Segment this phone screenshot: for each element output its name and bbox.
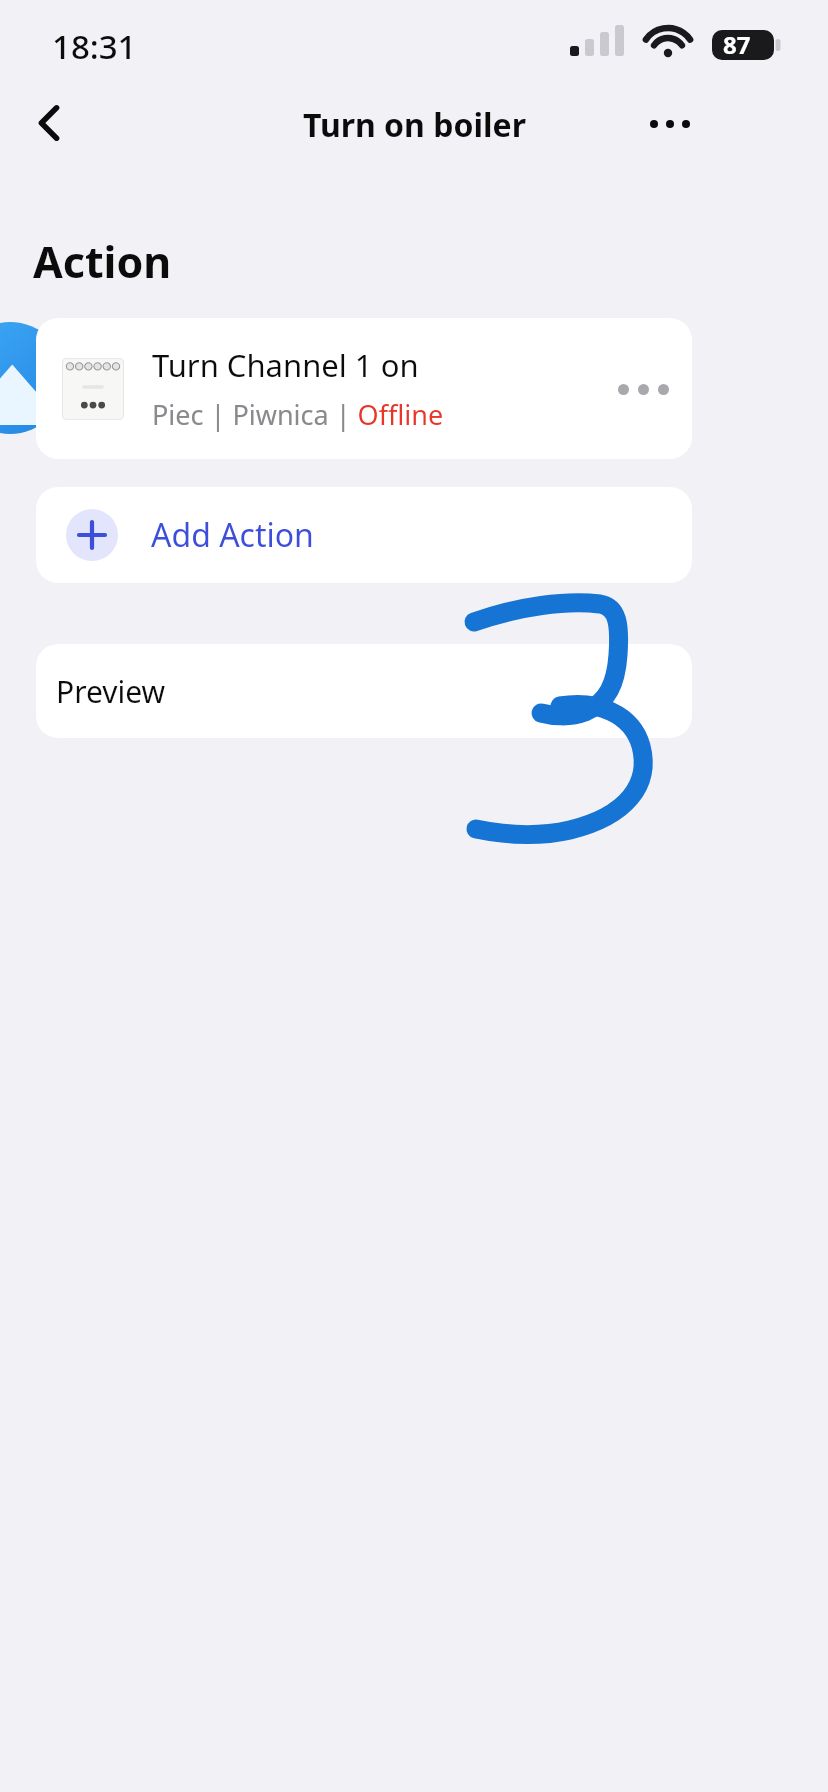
staticText: Turn Channel 1 on xyxy=(152,344,419,386)
button[interactable]: Turn Channel 1 on xyxy=(36,318,692,459)
staticText: Preview xyxy=(56,671,166,712)
button[interactable]: Back xyxy=(20,92,82,154)
staticText: Turn on boiler xyxy=(303,103,526,147)
button[interactable]: More options xyxy=(638,92,702,156)
staticText: Action xyxy=(33,232,172,291)
staticText: Piec | Piwnica | Offline xyxy=(152,396,444,433)
button[interactable]: Preview xyxy=(36,644,692,738)
button[interactable]: Action options xyxy=(598,344,688,434)
staticText: Add Action xyxy=(151,513,314,557)
button[interactable]: Add Action xyxy=(36,487,692,583)
staticText: 18:31 xyxy=(52,24,137,69)
staticText: 87 xyxy=(723,28,751,61)
